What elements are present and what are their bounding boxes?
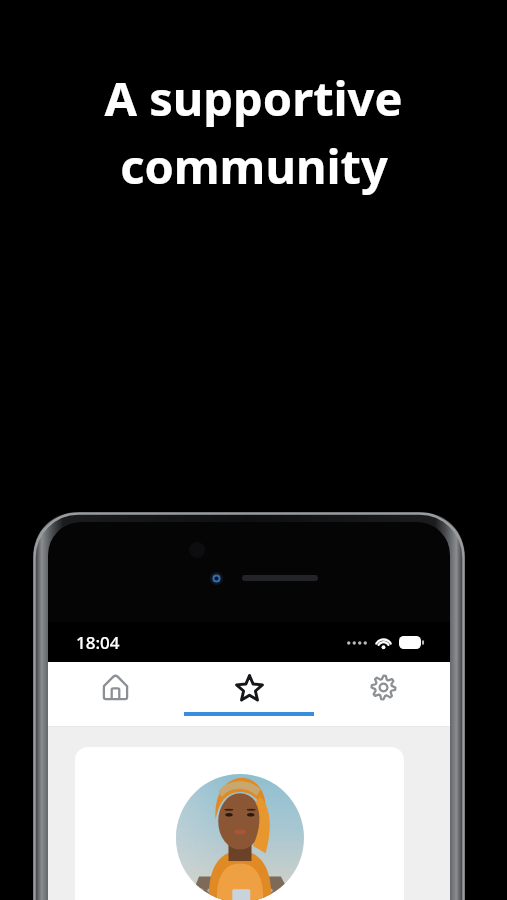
staticText: A supportive [104,66,403,130]
button[interactable]: Settings [316,662,450,727]
button[interactable]: Home [48,662,182,727]
button[interactable] [75,747,404,900]
button[interactable]: Favorites [182,662,316,727]
staticText: 18:04 [76,631,120,654]
staticText: community [120,134,388,198]
